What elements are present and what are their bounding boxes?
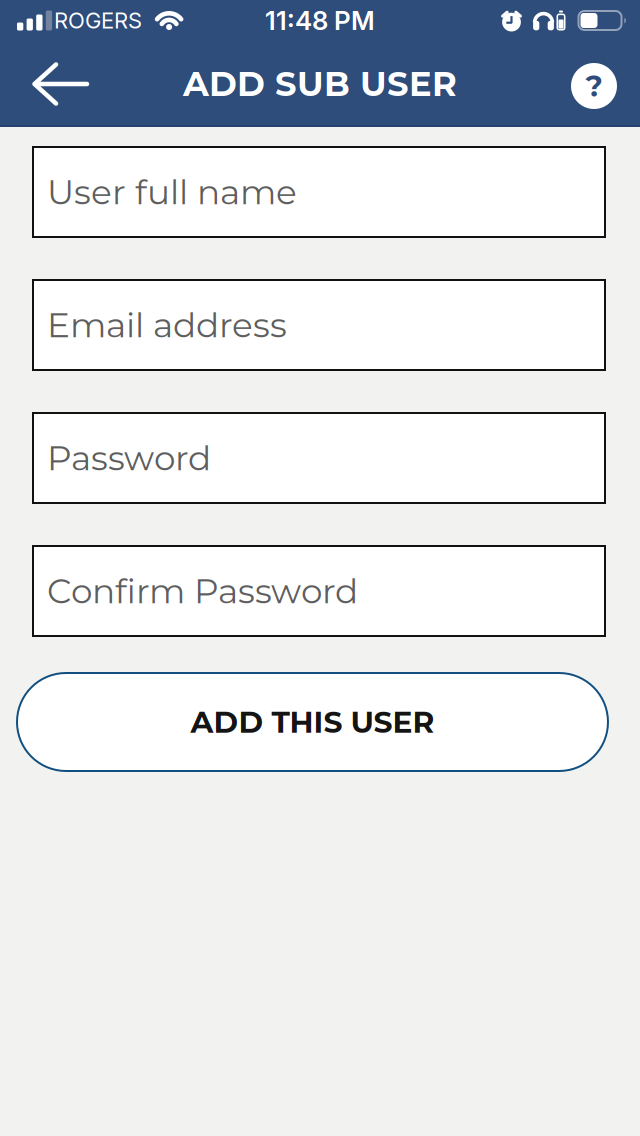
staticText: ?: [585, 68, 602, 104]
button[interactable]: Back: [0, 48, 89, 120]
staticText: Confirm Password: [47, 570, 358, 612]
button[interactable]: ADD THIS USER: [16, 672, 609, 772]
staticText: 11:48 PM: [265, 5, 375, 36]
staticText: Password: [47, 437, 211, 479]
staticText: ADD THIS USER: [190, 704, 434, 740]
staticText: Email address: [47, 304, 287, 346]
button[interactable]: Help: [571, 59, 640, 109]
staticText: ROGERS: [54, 7, 142, 34]
staticText: User full name: [47, 171, 297, 213]
staticText: ADD SUB USER: [183, 63, 457, 104]
